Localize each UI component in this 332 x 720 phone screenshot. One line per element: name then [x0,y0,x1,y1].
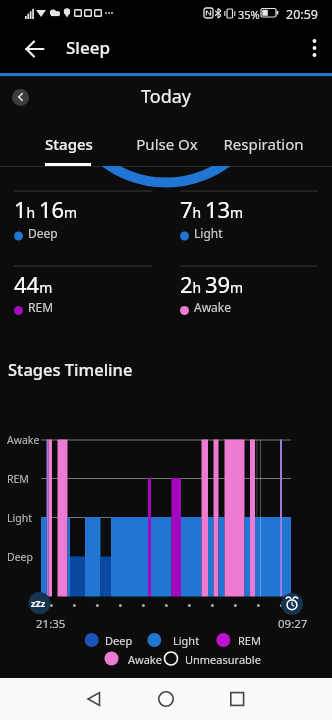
button[interactable] [14,34,48,64]
staticText: Today [141,84,191,109]
staticText: REM [238,633,261,648]
staticText: Sleep [66,36,110,59]
staticText: Pulse Ox [136,134,198,154]
staticText: Stages Timeline [8,358,133,380]
button[interactable] [73,680,113,718]
staticText: REM [28,299,54,315]
staticText: Deep [28,225,58,241]
staticText: 35% [238,7,260,22]
staticText: Deep [7,550,33,564]
button[interactable] [146,680,186,718]
staticText: 1h 16m [14,194,78,224]
staticText: Awake [128,652,162,667]
button[interactable]: Pulse Ox [121,134,212,154]
staticText: 09:27 [278,616,308,632]
staticText: Stages [45,134,93,154]
staticText: 2h 39m [180,269,244,299]
button[interactable]: Stages [24,134,114,154]
button[interactable] [217,680,257,718]
button[interactable]: Respiration [218,134,308,154]
staticText: 44m [14,269,53,299]
button[interactable] [12,89,29,106]
staticText: Awake [194,299,232,315]
staticText: Deep [105,633,133,648]
staticText: 20:59 [286,6,318,23]
staticText: Light [7,511,32,525]
staticText: REM [7,472,29,486]
staticText: zZz [31,597,46,609]
staticText: 7h 13m [180,194,244,224]
staticText: Light [194,225,223,241]
staticText: Unmeasurable [185,652,261,667]
staticText: Light [173,633,200,648]
button[interactable] [300,30,330,68]
staticText: Awake [7,433,40,447]
staticText: 21:35 [36,616,66,632]
staticText: Respiration [223,134,304,154]
